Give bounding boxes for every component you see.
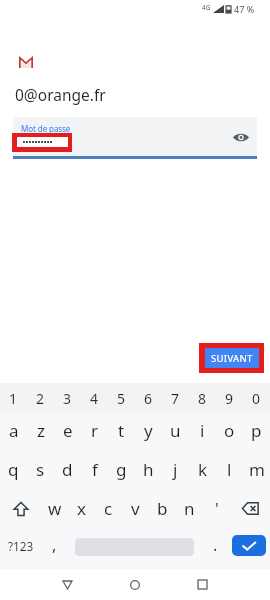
staticText: p	[251, 419, 262, 442]
staticText: b	[157, 497, 168, 520]
button[interactable]: d	[54, 451, 81, 488]
staticText: 6	[144, 389, 153, 408]
staticText: k	[198, 458, 208, 481]
button[interactable]: a	[0, 412, 27, 448]
button[interactable]: f	[81, 451, 108, 488]
button[interactable]	[68, 530, 200, 569]
button[interactable]: k	[189, 451, 216, 488]
button[interactable]: g	[108, 451, 135, 488]
staticText: 47 %	[234, 3, 255, 15]
button[interactable]: l	[216, 451, 243, 488]
button[interactable]: ,	[41, 530, 68, 569]
staticText: 3	[63, 389, 72, 408]
staticText: 8	[198, 389, 207, 408]
staticText: s	[36, 458, 45, 481]
button[interactable]: Applications récentes	[182, 569, 222, 600]
staticText: v	[131, 497, 140, 520]
button[interactable]: 3	[54, 383, 81, 414]
button[interactable]: e	[54, 412, 81, 448]
button[interactable]: Accueil	[115, 569, 155, 600]
staticText: x	[77, 497, 86, 520]
button[interactable]: z	[27, 412, 54, 448]
staticText: y	[144, 419, 153, 442]
button[interactable]: v	[122, 489, 149, 527]
staticText: c	[104, 497, 113, 520]
staticText: 5	[117, 389, 126, 408]
button[interactable]: 8	[189, 383, 216, 414]
button[interactable]: x	[68, 489, 95, 527]
button[interactable]: i	[189, 412, 216, 448]
staticText: q	[8, 458, 19, 481]
staticText: r	[91, 419, 99, 442]
button[interactable]: 0	[243, 383, 270, 414]
staticText: ?123	[8, 538, 34, 554]
button[interactable]: w	[41, 489, 68, 527]
button[interactable]: Valider	[232, 535, 266, 556]
button[interactable]: s	[27, 451, 54, 488]
staticText: '	[215, 497, 219, 520]
staticText: a	[9, 419, 19, 442]
staticText: 0@orange.fr	[15, 84, 106, 105]
button[interactable]: c	[95, 489, 122, 527]
staticText: n	[184, 497, 195, 520]
button[interactable]: 5	[108, 383, 135, 414]
staticText: u	[170, 419, 181, 442]
staticText: 2	[36, 389, 45, 408]
staticText: m	[249, 458, 265, 481]
button[interactable]: 6	[135, 383, 162, 414]
button[interactable]: Retour	[47, 569, 87, 600]
staticText: z	[37, 419, 45, 442]
staticText: .	[213, 534, 218, 556]
button[interactable]: r	[81, 412, 108, 448]
staticText: w	[48, 497, 62, 520]
button[interactable]: Supprimer	[230, 489, 270, 527]
staticText: i	[200, 419, 205, 442]
staticText: e	[63, 419, 73, 442]
staticText: j	[173, 458, 178, 481]
staticText: d	[62, 458, 73, 481]
button[interactable]: b	[149, 489, 176, 527]
staticText: 0	[252, 389, 261, 408]
staticText: l	[227, 458, 232, 481]
button[interactable]: .	[203, 530, 228, 569]
button[interactable]: j	[162, 451, 189, 488]
staticText: g	[116, 458, 127, 481]
staticText: 4	[90, 389, 99, 408]
button[interactable]: 9	[216, 383, 243, 414]
button[interactable]: ?123	[0, 530, 41, 569]
button[interactable]: t	[108, 412, 135, 448]
button[interactable]: u	[162, 412, 189, 448]
staticText: f	[92, 458, 98, 481]
button[interactable]: n	[176, 489, 203, 527]
button[interactable]: Maj	[0, 489, 41, 527]
button[interactable]: 4	[81, 383, 108, 414]
button[interactable]: SUIVANT	[205, 348, 259, 368]
button[interactable]: 7	[162, 383, 189, 414]
button[interactable]: h	[135, 451, 162, 488]
staticText: 7	[171, 389, 180, 408]
staticText: Mot de passe	[21, 123, 71, 134]
staticText: 1	[9, 389, 18, 408]
staticText: h	[143, 458, 154, 481]
staticText: ,	[52, 534, 57, 556]
button[interactable]: 1	[0, 383, 27, 414]
staticText: 4G	[202, 3, 211, 12]
button[interactable]: m	[243, 451, 270, 488]
button[interactable]: '	[203, 489, 230, 527]
button[interactable]: Afficher le mot de passe	[233, 132, 249, 143]
button[interactable]: p	[243, 412, 270, 448]
staticText: t	[118, 419, 125, 442]
staticText: o	[224, 419, 235, 442]
button[interactable]: 2	[27, 383, 54, 414]
button[interactable]: o	[216, 412, 243, 448]
staticText: SUIVANT	[211, 352, 253, 365]
button[interactable]: y	[135, 412, 162, 448]
staticText: 9	[225, 389, 234, 408]
button[interactable]: q	[0, 451, 27, 488]
